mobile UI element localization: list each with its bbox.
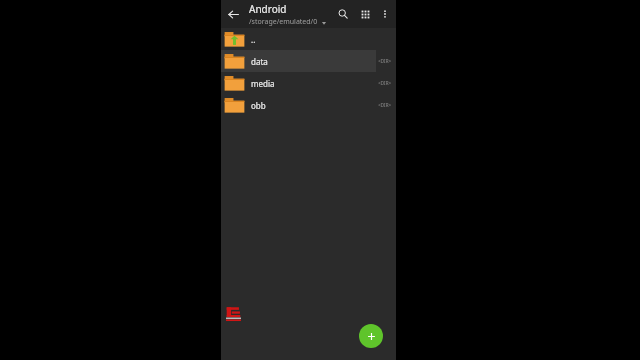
- staticText: obb: [251, 100, 378, 111]
- button[interactable]: data: [221, 50, 396, 72]
- staticText: <DIR>: [378, 80, 391, 86]
- button[interactable]: Back: [221, 2, 245, 26]
- staticText: <DIR>: [378, 58, 391, 64]
- staticText: ..: [251, 34, 396, 45]
- staticText: /storage/emulated/0: [249, 17, 318, 27]
- staticText: Android: [249, 2, 287, 16]
- staticText: data: [251, 56, 378, 67]
- button[interactable]: obb: [221, 94, 396, 116]
- button[interactable]: Search: [332, 3, 354, 25]
- button[interactable]: More options: [376, 5, 394, 23]
- button[interactable]: Grid view: [354, 3, 376, 25]
- staticText: media: [251, 78, 378, 89]
- button[interactable]: media: [221, 72, 396, 94]
- button[interactable]: ..: [221, 28, 396, 50]
- staticText: <DIR>: [378, 102, 391, 108]
- button[interactable]: Add: [359, 324, 383, 348]
